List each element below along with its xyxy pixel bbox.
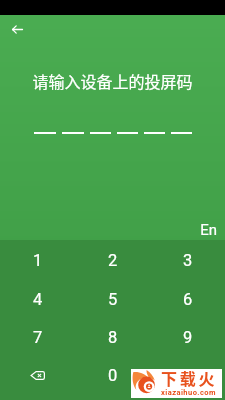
- staticText: 6: [183, 290, 193, 309]
- button[interactable]: 9: [150, 318, 225, 357]
- button[interactable]: 3: [150, 240, 225, 280]
- staticText: xiazaihuo.com: [161, 388, 216, 397]
- staticText: 请输入设备上的投屏码: [0, 69, 225, 92]
- button[interactable]: 8: [75, 318, 150, 357]
- button[interactable]: 6: [150, 280, 225, 318]
- button[interactable]: 2: [75, 240, 150, 280]
- button[interactable]: 1: [0, 240, 75, 280]
- staticText: 2: [108, 251, 118, 270]
- staticText: 9: [183, 328, 193, 347]
- button[interactable]: 0: [75, 354, 150, 397]
- staticText: 7: [33, 328, 43, 347]
- button[interactable]: Back: [0, 16, 36, 43]
- staticText: 下载火: [161, 366, 218, 389]
- staticText: 8: [108, 328, 118, 347]
- staticText: 1: [33, 251, 43, 270]
- button[interactable]: 5: [75, 280, 150, 318]
- staticText: 0: [108, 366, 118, 385]
- button[interactable]: 7: [0, 318, 75, 357]
- button[interactable]: 4: [0, 280, 75, 318]
- staticText: En: [0, 221, 217, 239]
- button[interactable]: Delete: [0, 354, 75, 397]
- staticText: 3: [183, 251, 193, 270]
- staticText: 5: [108, 290, 118, 309]
- staticText: 4: [33, 290, 43, 309]
- button[interactable]: [150, 354, 225, 397]
